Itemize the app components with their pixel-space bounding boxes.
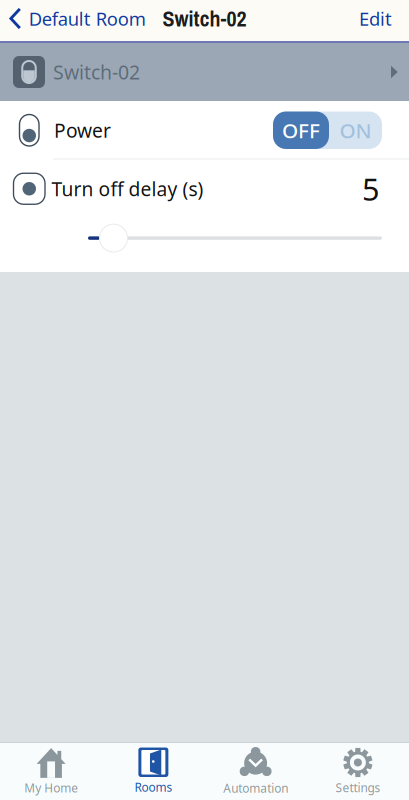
staticText: ON (339, 116, 371, 144)
button[interactable]: Rooms (102, 742, 204, 800)
button[interactable]: Edit (359, 6, 409, 31)
button[interactable]: ON (329, 111, 382, 149)
staticText: Automation (223, 780, 288, 796)
staticText: Settings (335, 779, 380, 796)
button[interactable]: Default Room (0, 6, 146, 31)
staticText: Default Room (29, 6, 146, 31)
button[interactable]: My Home (0, 742, 102, 800)
button[interactable]: Automation (204, 742, 307, 800)
button[interactable]: Settings (307, 742, 409, 800)
button[interactable]: OFF (273, 111, 329, 149)
staticText: Rooms (134, 779, 172, 795)
staticText: Switch-02 (162, 4, 246, 33)
staticText: Switch-02 (53, 59, 140, 85)
staticText: OFF (282, 116, 320, 144)
staticText: Power (54, 117, 111, 143)
staticText: 5 (362, 168, 380, 210)
button[interactable]: Switch-02 (0, 43, 409, 101)
staticText: Edit (359, 6, 392, 31)
staticText: Turn off delay (s) (51, 176, 203, 202)
staticText: My Home (24, 780, 78, 796)
